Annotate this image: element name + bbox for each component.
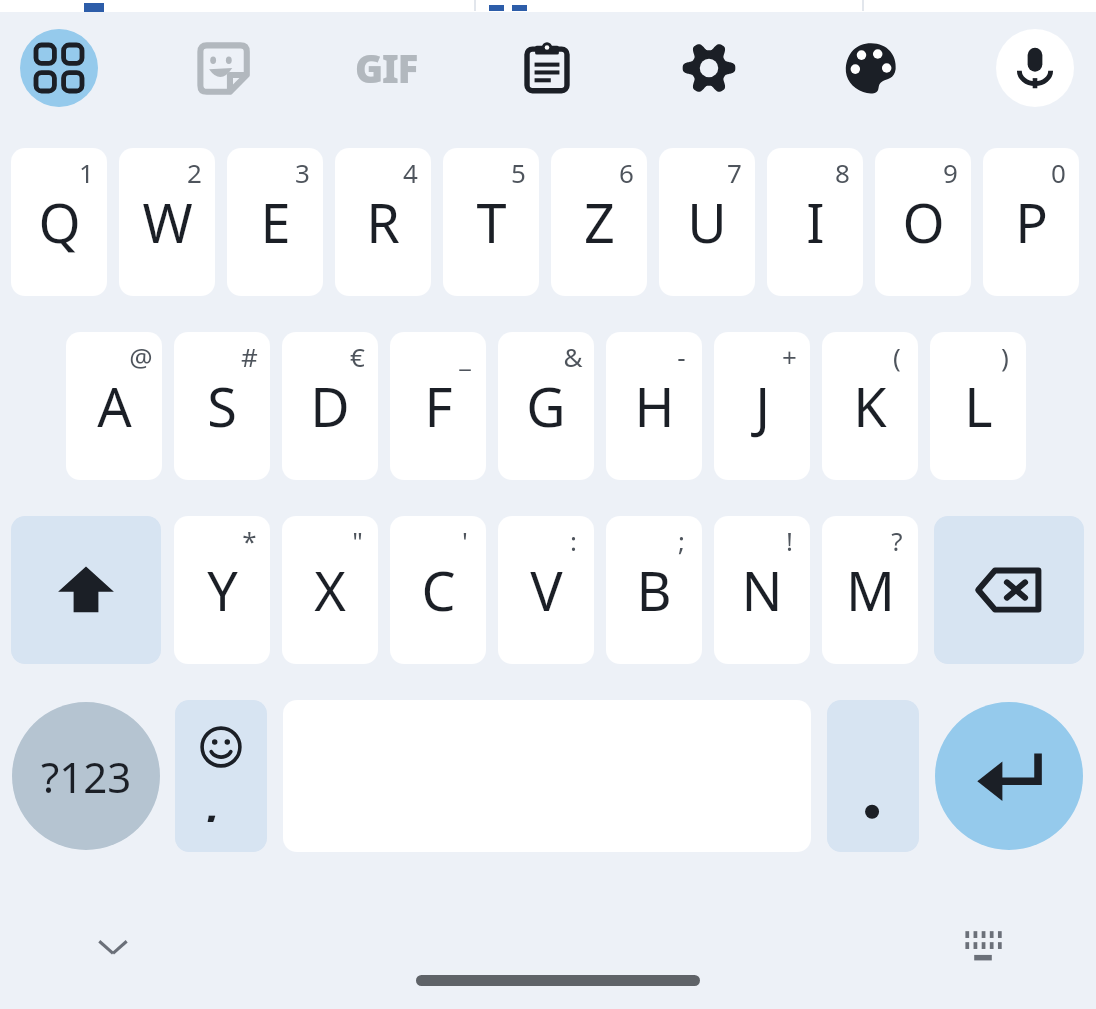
staticText: + [782,339,797,374]
button[interactable]: B [606,516,702,664]
button[interactable]: GIF [340,38,432,98]
staticText: J [755,369,770,443]
staticText: _ [459,339,471,374]
staticText: 5 [511,155,526,190]
staticText: W [142,185,193,259]
staticText: 2 [187,155,202,190]
staticText: ?123 [41,748,132,805]
button[interactable]: Z [551,148,647,296]
staticText: € [350,339,365,374]
staticText: A [97,369,132,443]
staticText: ; [678,523,685,558]
button[interactable]: ?123 [12,702,160,850]
button[interactable]: Emoji [175,700,267,852]
button[interactable]: G [498,332,594,480]
button[interactable]: A [66,332,162,480]
button[interactable]: J [714,332,810,480]
staticText: F [424,369,453,443]
button[interactable]: K [822,332,918,480]
staticText: Q [38,185,81,259]
button[interactable]: M [822,516,918,664]
staticText: , [205,772,219,822]
button[interactable]: R [335,148,431,296]
staticText: C [421,553,456,627]
button[interactable]: D [282,332,378,480]
staticText: - [677,339,686,374]
staticText: S [207,369,237,443]
button[interactable]: Voice input [996,29,1074,107]
button[interactable]: Apps [20,29,98,107]
staticText: N [741,553,783,627]
staticText: D [310,369,350,443]
staticText: 3 [295,155,310,190]
staticText: GIF [355,42,418,94]
staticText: " [352,523,363,558]
staticText: @ [129,339,153,374]
staticText: P [1015,185,1048,259]
staticText: T [476,185,507,259]
button[interactable]: Q [11,148,107,296]
button[interactable]: Settings [673,32,745,104]
button[interactable]: X [282,516,378,664]
button[interactable]: W [119,148,215,296]
button[interactable]: Hide keyboard [78,912,148,982]
staticText: ' [462,523,468,558]
staticText: U [687,185,727,259]
button[interactable]: F [390,332,486,480]
button[interactable]: Period [827,700,919,852]
staticText: 7 [727,155,742,190]
button[interactable]: T [443,148,539,296]
staticText: H [634,369,675,443]
button[interactable]: E [227,148,323,296]
staticText: 9 [943,155,958,190]
button[interactable]: H [606,332,702,480]
staticText: 8 [835,155,850,190]
button[interactable]: L [930,332,1026,480]
staticText: # [241,339,258,374]
button[interactable]: S [174,332,270,480]
button[interactable]: U [659,148,755,296]
staticText: : [570,523,577,558]
button[interactable]: P [983,148,1079,296]
button[interactable]: Y [174,516,270,664]
staticText: ( [893,339,901,374]
staticText: B [636,553,672,627]
staticText: * [242,523,257,558]
staticText: O [902,185,945,259]
staticText: R [366,185,400,259]
staticText: 4 [403,155,418,190]
staticText: ? [891,523,903,558]
button[interactable]: O [875,148,971,296]
staticText: M [846,553,895,627]
button[interactable]: C [390,516,486,664]
button[interactable]: Clipboard [512,32,582,104]
staticText: X [314,553,346,627]
staticText: G [526,369,566,443]
staticText: E [260,185,291,259]
button[interactable]: Theme [835,32,907,104]
staticText: 6 [619,155,634,190]
staticText: K [853,369,887,443]
staticText: V [530,553,563,627]
staticText: 1 [79,155,94,190]
button[interactable]: I [767,148,863,296]
staticText: ! [786,523,793,558]
staticText: & [563,339,583,374]
button[interactable]: Shift [11,516,161,664]
staticText: I [806,185,825,259]
button[interactable]: Enter [935,702,1083,850]
staticText: Z [584,185,615,259]
button[interactable]: N [714,516,810,664]
button[interactable]: V [498,516,594,664]
staticText: ) [1001,339,1009,374]
button[interactable]: Stickers [185,33,261,103]
staticText: L [964,369,993,443]
staticText: 0 [1051,155,1066,190]
button[interactable]: Backspace [934,516,1084,664]
button[interactable]: Switch keyboard [948,912,1018,982]
staticText: Y [207,553,238,627]
